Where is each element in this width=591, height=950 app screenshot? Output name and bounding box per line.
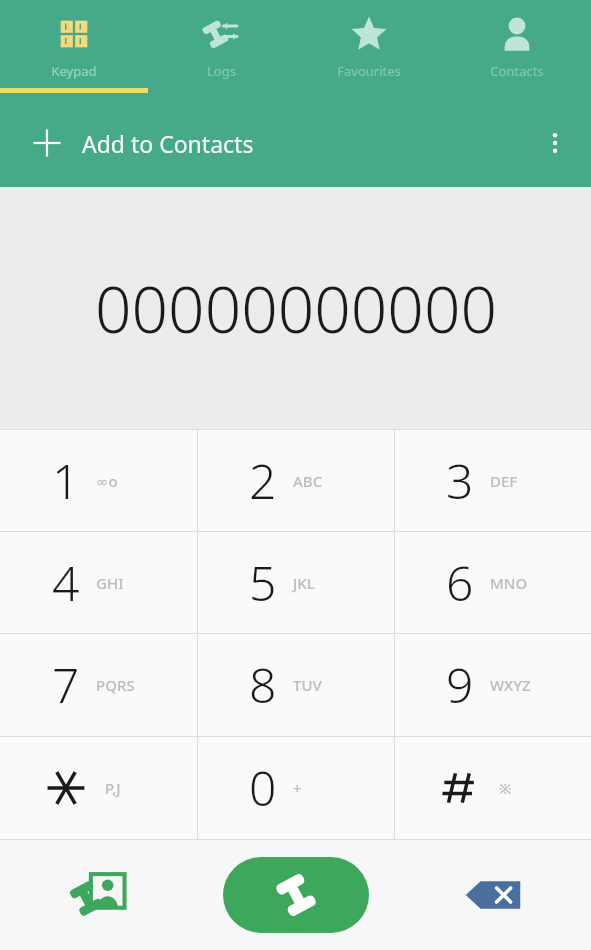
staticText: ∞o bbox=[96, 471, 118, 491]
staticText: Logs bbox=[207, 62, 236, 80]
button[interactable]: P,J bbox=[0, 736, 197, 839]
staticText: Contacts bbox=[490, 62, 544, 80]
button[interactable]: 7 bbox=[0, 633, 197, 736]
staticText: Add to Contacts bbox=[82, 128, 254, 159]
button[interactable]: 3 bbox=[395, 429, 591, 531]
button[interactable]: Add bbox=[0, 110, 519, 176]
button[interactable]: Backspace bbox=[394, 840, 591, 950]
button[interactable]: 2 bbox=[198, 429, 394, 531]
button[interactable]: 4 bbox=[0, 531, 197, 633]
button[interactable]: Favourites tab bbox=[295, 0, 443, 92]
staticText: 9 bbox=[446, 652, 474, 717]
other: Logs tab bbox=[201, 14, 241, 54]
other: Favourites tab bbox=[349, 14, 389, 54]
staticText: 2 bbox=[249, 448, 277, 513]
other: Contacts tab bbox=[497, 14, 537, 54]
staticText: WXYZ bbox=[490, 675, 531, 695]
staticText: 1 bbox=[52, 448, 80, 513]
staticText: 00000000000 bbox=[95, 265, 497, 352]
staticText: JKL bbox=[293, 573, 315, 593]
button[interactable]: ※ bbox=[395, 736, 591, 839]
button[interactable]: Logs tab bbox=[147, 0, 295, 92]
staticText: 6 bbox=[446, 550, 474, 615]
other: Add bbox=[30, 126, 64, 160]
staticText: TUV bbox=[293, 675, 322, 695]
button[interactable]: More options bbox=[519, 110, 591, 176]
staticText: ※ bbox=[499, 778, 512, 798]
button[interactable]: Keypad tab bbox=[0, 0, 147, 92]
staticText: Favourites bbox=[337, 62, 401, 80]
button[interactable]: 8 bbox=[198, 633, 394, 736]
staticText: PQRS bbox=[96, 675, 135, 695]
button[interactable]: 5 bbox=[198, 531, 394, 633]
button[interactable]: 0 bbox=[198, 736, 394, 839]
button[interactable]: Contacts tab bbox=[443, 0, 591, 92]
staticText: 4 bbox=[52, 550, 80, 615]
button[interactable]: Video call bbox=[0, 840, 197, 950]
staticText: ABC bbox=[293, 471, 323, 491]
staticText: 5 bbox=[249, 550, 277, 615]
button[interactable]: 6 bbox=[395, 531, 591, 633]
staticText: 3 bbox=[446, 448, 474, 513]
other: Keypad tab bbox=[53, 13, 95, 55]
staticText: DEF bbox=[490, 471, 518, 491]
button[interactable]: 9 bbox=[395, 633, 591, 736]
staticText: MNO bbox=[490, 573, 528, 593]
staticText: Keypad bbox=[51, 62, 97, 80]
staticText: GHI bbox=[96, 573, 124, 593]
staticText: + bbox=[293, 778, 302, 798]
staticText: 7 bbox=[52, 652, 80, 717]
button[interactable]: Call bbox=[223, 857, 369, 933]
staticText: 0 bbox=[249, 755, 277, 820]
staticText: 8 bbox=[249, 652, 277, 717]
staticText: P,J bbox=[105, 778, 121, 798]
button[interactable]: 1 bbox=[0, 429, 197, 531]
